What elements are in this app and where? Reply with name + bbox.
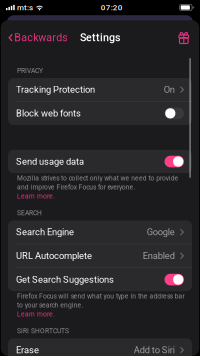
button[interactable]: Learn more.	[17, 192, 189, 201]
staticText: Learn more.	[17, 192, 55, 200]
staticText: SIRI SHORTCUTS	[17, 327, 69, 335]
button[interactable]: Get Search Suggestions	[8, 268, 192, 291]
button[interactable]: Send usage data	[8, 150, 192, 173]
button[interactable]: Search Engine	[8, 220, 192, 244]
staticText: to your search engine.	[17, 301, 83, 309]
staticText: Search Engine	[16, 227, 74, 237]
staticText: Block web fonts	[16, 108, 81, 119]
button[interactable]: Tracking Protection	[8, 78, 192, 101]
staticText: SEARCH	[17, 209, 42, 217]
staticText: Tracking Protection	[16, 84, 95, 95]
staticText: Firefox Focus will send what you type in…	[17, 292, 184, 300]
staticText: mt:s	[17, 3, 33, 12]
button[interactable]: URL Autocomplete	[8, 244, 192, 267]
staticText: Google	[147, 227, 175, 237]
button[interactable]: Learn more.	[17, 310, 189, 319]
staticText: Learn more.	[17, 310, 55, 318]
staticText: Erase	[16, 345, 39, 355]
staticText: Enabled	[143, 250, 175, 261]
staticText: Mozilla strives to collect only what we …	[17, 174, 178, 182]
staticText: Settings	[80, 31, 120, 44]
staticText: URL Autocomplete	[16, 250, 92, 261]
button[interactable]: Block web fonts	[8, 102, 192, 125]
button[interactable]: Backwards	[1, 31, 68, 44]
staticText: Backwards	[14, 31, 68, 44]
staticText: Add to Siri	[134, 345, 175, 355]
staticText: and improve Firefox Focus for everyone.	[17, 183, 135, 191]
staticText: On	[164, 84, 175, 95]
staticText: Send usage data	[16, 156, 84, 167]
staticText: PRIVACY	[17, 67, 43, 74]
staticText: 07:20	[101, 3, 123, 12]
button[interactable]: Gift	[179, 30, 199, 45]
button[interactable]: Erase	[8, 338, 192, 356]
staticText: Get Search Suggestions	[16, 274, 114, 285]
